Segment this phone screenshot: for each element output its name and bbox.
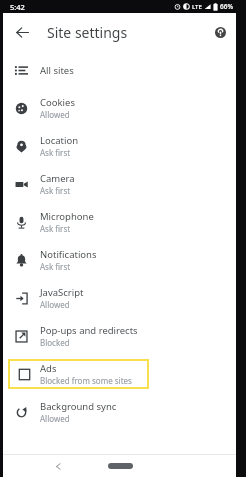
staticText: All sites (40, 64, 74, 77)
staticText: Blocked from some sites (40, 375, 132, 386)
staticText: LTE (192, 3, 202, 11)
staticText: Camera (40, 172, 75, 185)
button[interactable]: Back (9, 19, 35, 45)
button[interactable]: Cookies (3, 89, 236, 127)
button[interactable]: Pop-ups and redirects (3, 317, 236, 355)
button[interactable]: JavaScript (3, 279, 236, 317)
staticText: Location (40, 134, 79, 147)
button[interactable]: Ads (8, 359, 149, 389)
staticText: Ask first (40, 223, 71, 234)
staticText: Site settings (47, 23, 128, 42)
button[interactable]: Camera (3, 165, 236, 203)
button[interactable]: Home (103, 458, 137, 474)
button[interactable]: Microphone (3, 203, 236, 241)
staticText: Background sync (40, 400, 117, 413)
staticText: Allowed (40, 413, 70, 424)
button[interactable]: Background sync (3, 393, 236, 431)
button[interactable]: Back (49, 457, 67, 475)
button[interactable]: Notifications (3, 241, 236, 279)
staticText: 66% (220, 2, 233, 11)
staticText: JavaScript (40, 286, 84, 299)
staticText: 5:42 (10, 2, 25, 12)
staticText: Microphone (40, 210, 94, 223)
button[interactable]: Location (3, 127, 236, 165)
staticText: Pop-ups and redirects (40, 324, 138, 337)
staticText: Allowed (40, 109, 70, 120)
button[interactable]: Help (209, 21, 231, 43)
staticText: Ask first (40, 261, 71, 272)
staticText: Blocked (40, 337, 70, 348)
staticText: Allowed (40, 299, 70, 310)
staticText: Ask first (40, 185, 71, 196)
staticText: Ads (40, 362, 57, 375)
button[interactable]: All sites (3, 51, 236, 89)
staticText: Cookies (40, 96, 75, 109)
staticText: Ask first (40, 147, 71, 158)
staticText: Notifications (40, 248, 97, 261)
